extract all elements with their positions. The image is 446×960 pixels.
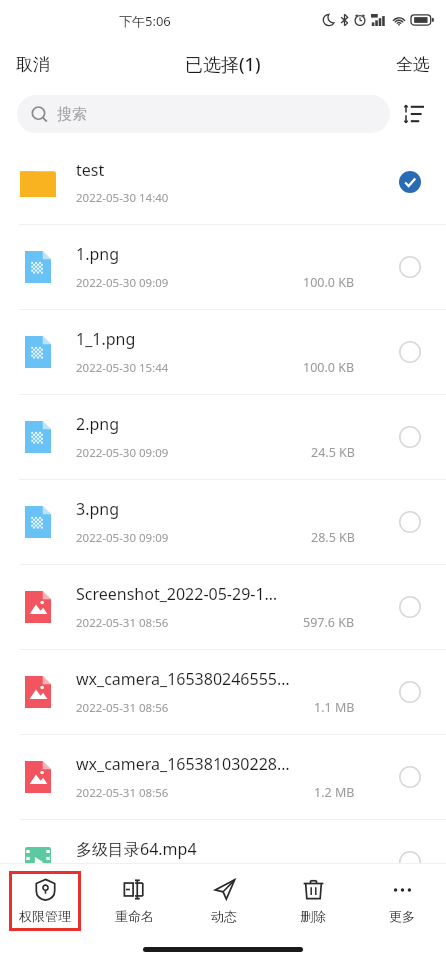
staticText: 删除 bbox=[300, 908, 326, 924]
staticText: wx_camera_165380246555… bbox=[76, 668, 290, 690]
button[interactable]: Select bbox=[393, 420, 427, 454]
staticText: 重命名 bbox=[115, 908, 154, 924]
button[interactable]: Selected bbox=[393, 165, 427, 199]
staticText: 2022-05-31 08:56 bbox=[76, 785, 169, 801]
staticText: 下午5:06 bbox=[119, 12, 171, 30]
staticText: 100.0 KB bbox=[303, 274, 355, 291]
staticText: 动态 bbox=[211, 908, 237, 924]
button[interactable]: 1.png bbox=[0, 225, 446, 309]
staticText: 更多 bbox=[389, 908, 415, 924]
button[interactable]: test bbox=[0, 140, 446, 224]
button[interactable]: 权限管理 bbox=[9, 871, 81, 931]
staticText: 1_1.png bbox=[76, 328, 136, 350]
button[interactable]: 1_1.png bbox=[0, 310, 446, 394]
staticText: 3.png bbox=[76, 498, 120, 520]
button[interactable]: 2.png bbox=[0, 395, 446, 479]
staticText: test bbox=[76, 159, 105, 181]
staticText: 取消 bbox=[16, 54, 50, 75]
button[interactable]: Select bbox=[393, 675, 427, 709]
button[interactable]: Select bbox=[393, 505, 427, 539]
staticText: 全选 bbox=[396, 54, 430, 75]
button[interactable]: Select bbox=[393, 845, 427, 879]
button[interactable]: Select bbox=[393, 335, 427, 369]
button[interactable]: 动态 bbox=[201, 871, 247, 931]
staticText: 100.0 KB bbox=[303, 359, 355, 376]
staticText: 搜索 bbox=[57, 105, 87, 124]
button[interactable]: Select bbox=[393, 590, 427, 624]
button[interactable]: 搜索 bbox=[17, 95, 390, 133]
staticText: 2022-05-30 09:09 bbox=[76, 445, 169, 461]
staticText: 2022-05-31 08:56 bbox=[76, 700, 169, 716]
button[interactable]: 取消 bbox=[0, 40, 66, 88]
button[interactable]: 更多 bbox=[379, 871, 425, 931]
staticText: 1.png bbox=[76, 243, 120, 265]
staticText: 2022-05-30 09:09 bbox=[76, 530, 169, 546]
staticText: 2.png bbox=[76, 413, 120, 435]
button[interactable]: 全选 bbox=[380, 40, 446, 88]
button[interactable]: wx_camera_165380246555… bbox=[0, 650, 446, 734]
button[interactable]: 多级目录64.mp4 bbox=[0, 820, 446, 904]
staticText: 24.5 KB bbox=[311, 444, 355, 461]
button[interactable]: 3.png bbox=[0, 480, 446, 564]
staticText: 已选择(1) bbox=[185, 52, 261, 77]
staticText: 多级目录64.mp4 bbox=[76, 838, 197, 860]
staticText: 2022-05-30 14:40 bbox=[76, 190, 169, 206]
button[interactable]: 删除 bbox=[290, 871, 336, 931]
staticText: 2022-05-30 15:44 bbox=[76, 360, 169, 376]
staticText: 28.5 KB bbox=[311, 529, 355, 546]
staticText: 2022-05-30 09:09 bbox=[76, 275, 169, 291]
staticText: 2022-05-31 08:56 bbox=[76, 615, 169, 631]
staticText: 2022-05-30 14:13 bbox=[76, 870, 169, 886]
staticText: 1.2 MB bbox=[314, 784, 355, 801]
button[interactable]: Select bbox=[393, 250, 427, 284]
button[interactable]: Select bbox=[393, 760, 427, 794]
button[interactable]: Sort bbox=[390, 90, 438, 138]
button[interactable]: 重命名 bbox=[105, 871, 164, 931]
staticText: 权限管理 bbox=[19, 908, 71, 924]
staticText: wx_camera_165381030228… bbox=[76, 753, 290, 775]
button[interactable]: Screenshot_2022-05-29-1… bbox=[0, 565, 446, 649]
staticText: Screenshot_2022-05-29-1… bbox=[76, 583, 278, 605]
staticText: 1.1 MB bbox=[314, 699, 355, 716]
staticText: 597.6 KB bbox=[303, 614, 355, 631]
button[interactable]: wx_camera_165381030228… bbox=[0, 735, 446, 819]
staticText: 1.2 MB bbox=[314, 869, 355, 886]
